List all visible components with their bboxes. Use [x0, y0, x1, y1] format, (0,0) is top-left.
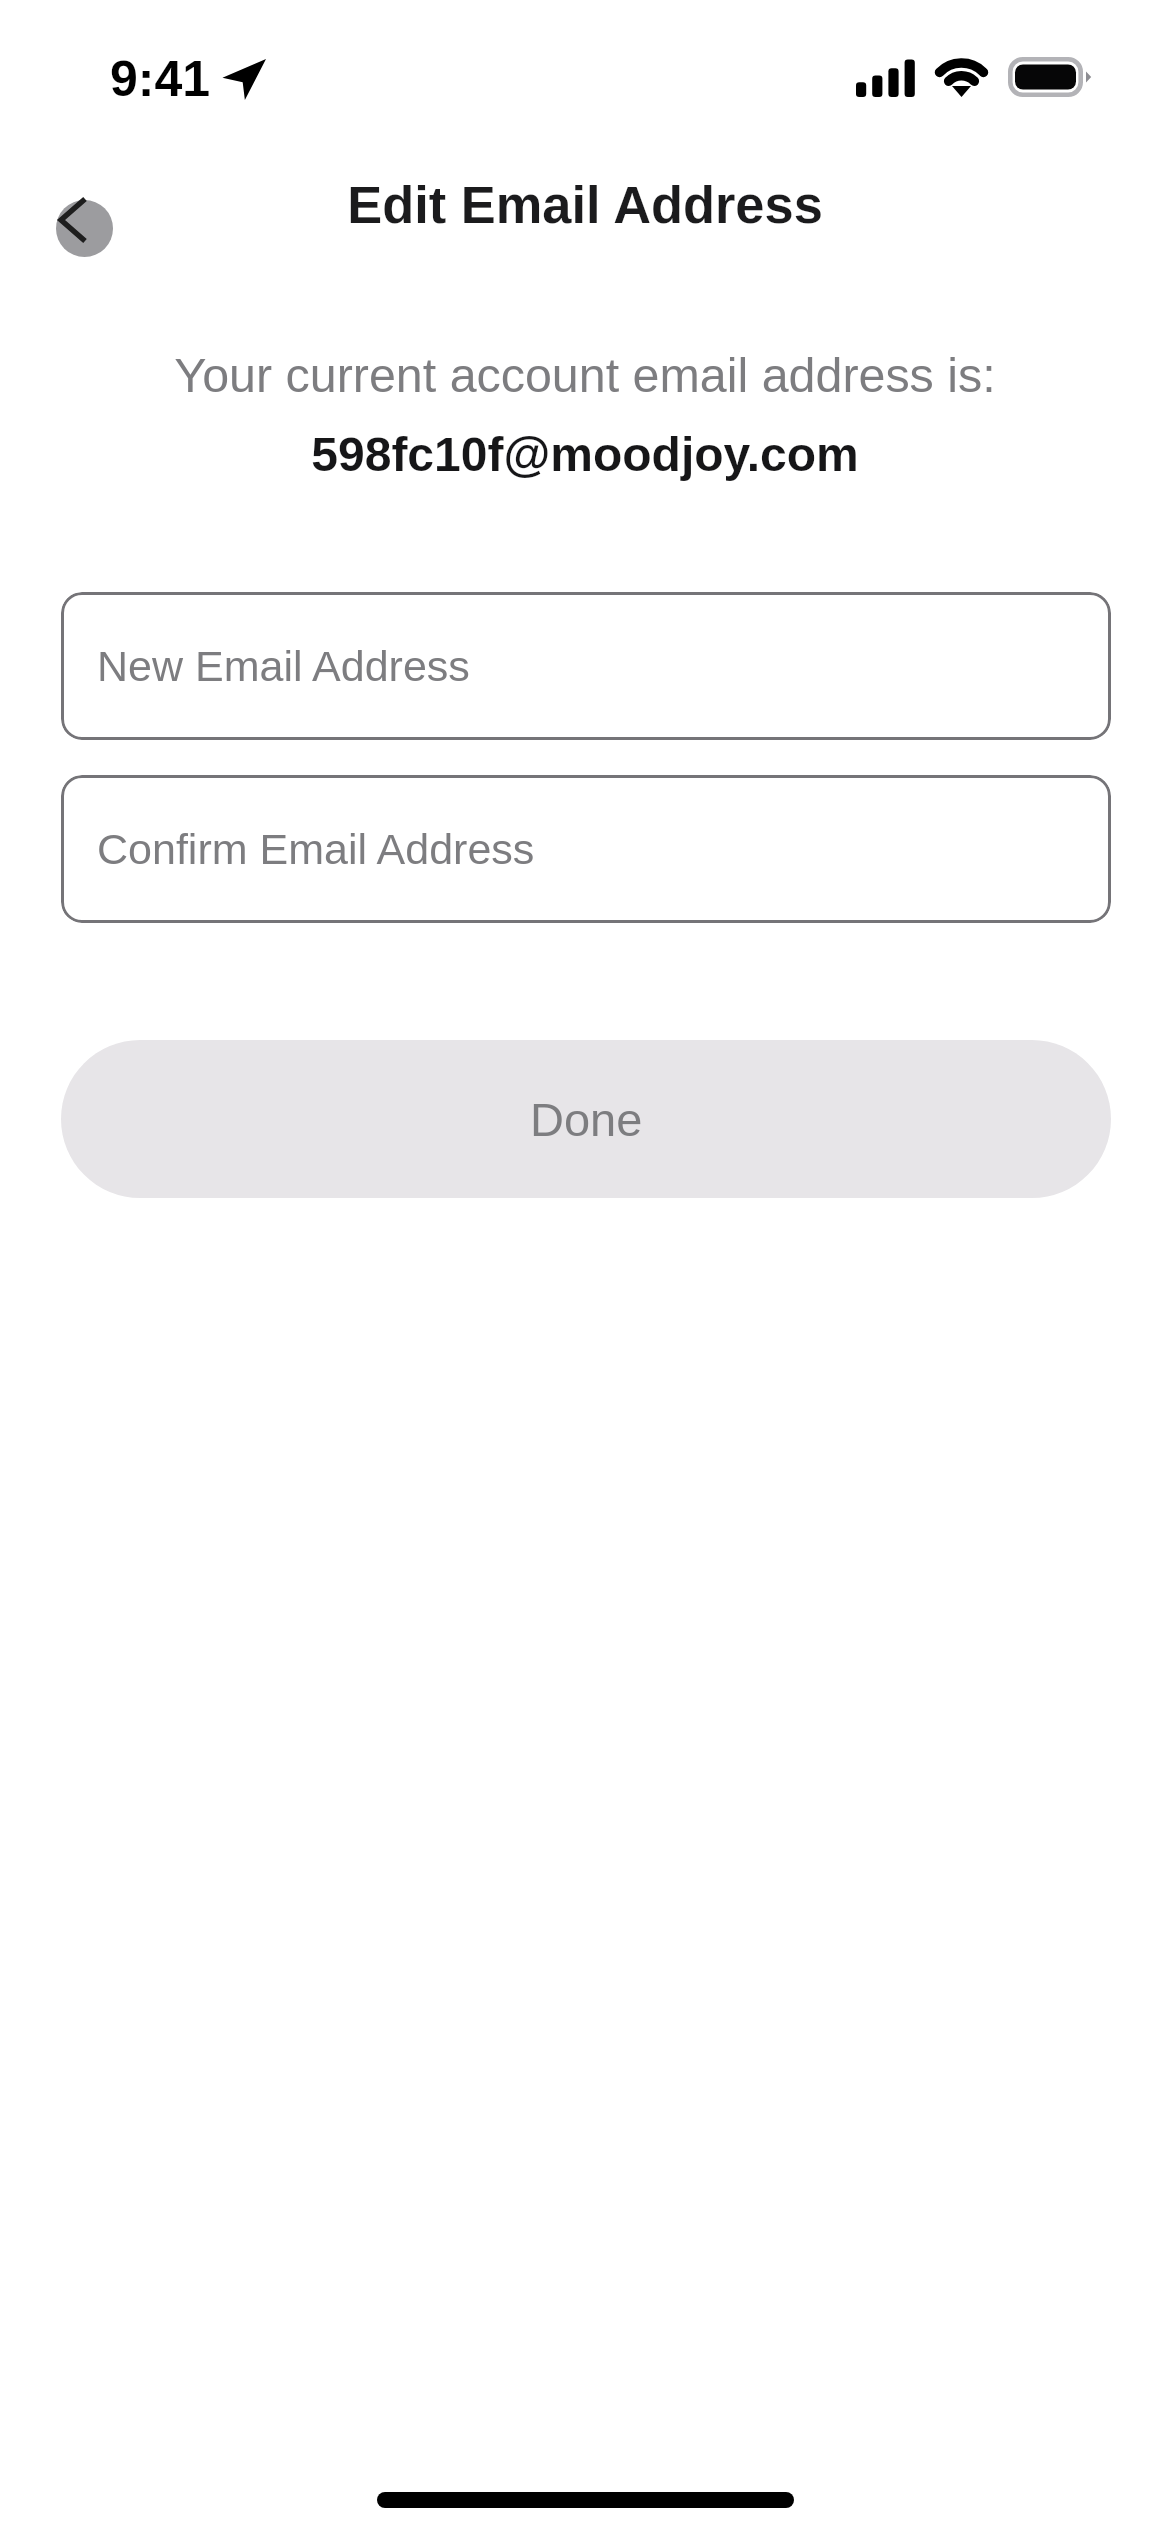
staticText: Your current account email address is:	[0, 348, 1170, 402]
button[interactable]: Back	[56, 196, 117, 261]
button[interactable]: Confirm Email Address	[61, 775, 1111, 923]
staticText: Confirm Email Address	[97, 825, 535, 873]
staticText: 9:41	[110, 51, 211, 107]
staticText: Done	[530, 1093, 643, 1146]
staticText: Edit Email Address	[0, 176, 1170, 235]
button[interactable]: New Email Address	[61, 592, 1111, 740]
button[interactable]: Done	[61, 1040, 1111, 1198]
staticText: New Email Address	[97, 642, 470, 690]
staticText: 598fc10f@moodjoy.com	[0, 428, 1170, 482]
